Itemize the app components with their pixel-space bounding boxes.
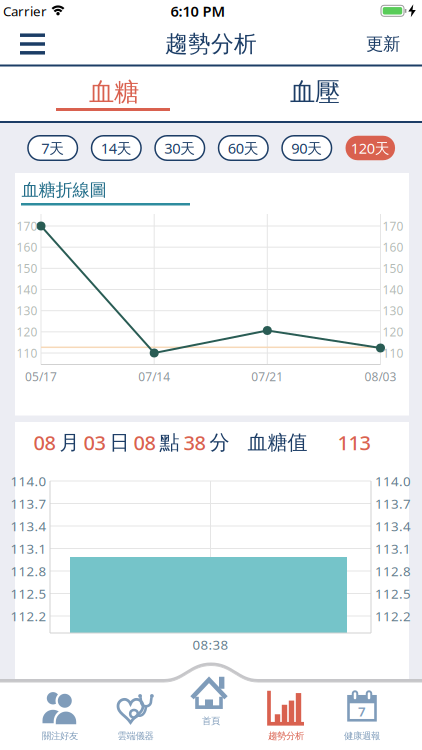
staticText: 7: [358, 702, 366, 720]
staticText: 130: [16, 303, 37, 319]
staticText: 07/21: [251, 368, 283, 384]
staticText: 170: [16, 218, 37, 234]
button[interactable]: 120天: [346, 136, 395, 160]
staticText: 112.5: [10, 585, 46, 602]
staticText: 6:10 PM: [170, 1, 225, 21]
staticText: 112.2: [375, 607, 411, 625]
staticText: 60天: [228, 138, 259, 158]
button[interactable]: 14天: [91, 136, 141, 160]
staticText: 130: [382, 303, 403, 319]
staticText: 7天: [41, 138, 64, 158]
staticText: 14天: [101, 138, 132, 158]
button[interactable]: 首頁: [188, 671, 234, 727]
staticText: 160: [382, 239, 403, 255]
staticText: 05/17: [25, 368, 57, 384]
staticText: 08: [133, 429, 155, 456]
button[interactable]: 7: [342, 690, 382, 742]
staticText: 08: [33, 429, 55, 456]
staticText: 113.7: [10, 495, 46, 512]
button[interactable]: 趨勢分析: [266, 690, 306, 742]
staticText: 38: [183, 429, 205, 456]
staticText: 140: [382, 281, 403, 297]
staticText: 血糖: [89, 76, 139, 107]
button[interactable]: 更新: [366, 33, 400, 55]
staticText: 150: [16, 260, 37, 276]
staticText: 90天: [291, 138, 322, 158]
staticText: 首頁: [202, 715, 220, 727]
staticText: 日: [109, 430, 129, 455]
staticText: 113: [337, 429, 370, 456]
staticText: 分: [209, 430, 229, 455]
staticText: 113.4: [10, 517, 46, 535]
staticText: 160: [16, 239, 37, 255]
staticText: 點: [159, 430, 179, 455]
staticText: 08/03: [364, 368, 396, 384]
staticText: 150: [382, 260, 403, 276]
staticText: 114.0: [375, 472, 411, 490]
button[interactable]: 血糖: [34, 72, 194, 112]
staticText: 血糖值: [247, 430, 307, 455]
staticText: 120: [382, 324, 403, 340]
button[interactable]: 雲端儀器: [115, 690, 155, 742]
staticText: 140: [16, 281, 37, 297]
staticText: 112.2: [10, 607, 46, 625]
staticText: 07/14: [138, 368, 170, 384]
staticText: 120: [16, 324, 37, 340]
staticText: 170: [382, 218, 403, 234]
staticText: 關注好友: [42, 730, 78, 742]
staticText: 血壓: [290, 76, 340, 107]
staticText: 112.8: [375, 562, 411, 580]
staticText: Carrier: [3, 2, 47, 20]
staticText: 113.7: [375, 495, 411, 512]
button[interactable]: Menu: [20, 33, 45, 54]
staticText: 趨勢分析: [268, 730, 304, 742]
staticText: 08:38: [192, 636, 228, 653]
staticText: 雲端儀器: [117, 730, 153, 742]
staticText: 112.8: [10, 562, 46, 580]
staticText: 03: [83, 429, 105, 456]
staticText: 更新: [366, 33, 400, 55]
button[interactable]: 90天: [282, 136, 332, 160]
staticText: 30天: [164, 138, 195, 158]
staticText: 113.4: [375, 517, 411, 535]
staticText: 112.5: [375, 585, 411, 602]
staticText: 趨勢分析: [165, 30, 257, 58]
staticText: 血糖折線圖: [21, 179, 106, 201]
staticText: 113.1: [375, 540, 411, 557]
staticText: 113.1: [10, 540, 46, 557]
staticText: 110: [16, 345, 37, 361]
staticText: 月: [59, 430, 79, 455]
staticText: 健康週報: [344, 730, 380, 742]
button[interactable]: 關注好友: [40, 690, 80, 742]
button[interactable]: 7天: [28, 136, 77, 160]
button[interactable]: 血壓: [235, 72, 395, 112]
button[interactable]: 60天: [219, 136, 268, 160]
staticText: 114.0: [10, 472, 46, 490]
staticText: 110: [382, 345, 403, 361]
button[interactable]: 30天: [155, 136, 205, 160]
staticText: 120天: [351, 138, 390, 158]
